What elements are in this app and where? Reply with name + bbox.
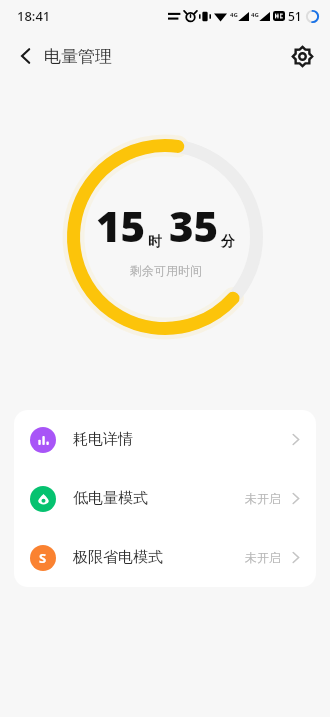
staticText: 时 xyxy=(148,233,162,251)
staticText: 未开启 xyxy=(245,491,281,506)
button[interactable]: 耗电详情 xyxy=(14,410,316,469)
staticText: 4G xyxy=(230,11,238,19)
button[interactable]: S xyxy=(14,528,316,587)
staticText: 4G xyxy=(251,11,259,19)
staticText: 极限省电模式 xyxy=(73,548,163,567)
staticText: 51 xyxy=(288,8,302,24)
staticText: 剩余可用时间 xyxy=(130,263,202,278)
staticText: 18:41 xyxy=(17,7,51,25)
staticText: 分 xyxy=(221,233,235,251)
staticText: 未开启 xyxy=(245,550,281,565)
button[interactable]: Back xyxy=(6,36,46,76)
staticText: 耗电详情 xyxy=(73,430,133,449)
button[interactable]: Settings xyxy=(282,36,322,76)
staticText: 电量管理 xyxy=(44,46,112,67)
staticText: 低电量模式 xyxy=(73,489,148,508)
staticText: S xyxy=(39,549,47,567)
staticText: 15 xyxy=(96,197,146,254)
button[interactable]: 低电量模式 xyxy=(14,469,316,528)
staticText: 35 xyxy=(169,197,219,254)
